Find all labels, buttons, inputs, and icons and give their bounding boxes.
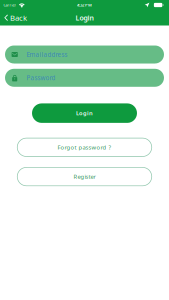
staticText: 4:32 PM (77, 2, 92, 8)
staticText: Forgot password ? (57, 143, 111, 151)
button[interactable]: Back (0, 10, 33, 25)
staticText: Login (75, 13, 93, 22)
button[interactable]: Login (32, 103, 137, 123)
staticText: Register (73, 173, 95, 181)
staticText: Emailaddress (27, 50, 68, 59)
staticText: Login (76, 109, 93, 117)
staticText: Carrier (3, 2, 16, 8)
button[interactable]: Register (17, 167, 152, 186)
staticText: Back (10, 12, 27, 23)
button[interactable]: Forgot password ? (17, 138, 152, 156)
staticText: Password (27, 73, 56, 82)
